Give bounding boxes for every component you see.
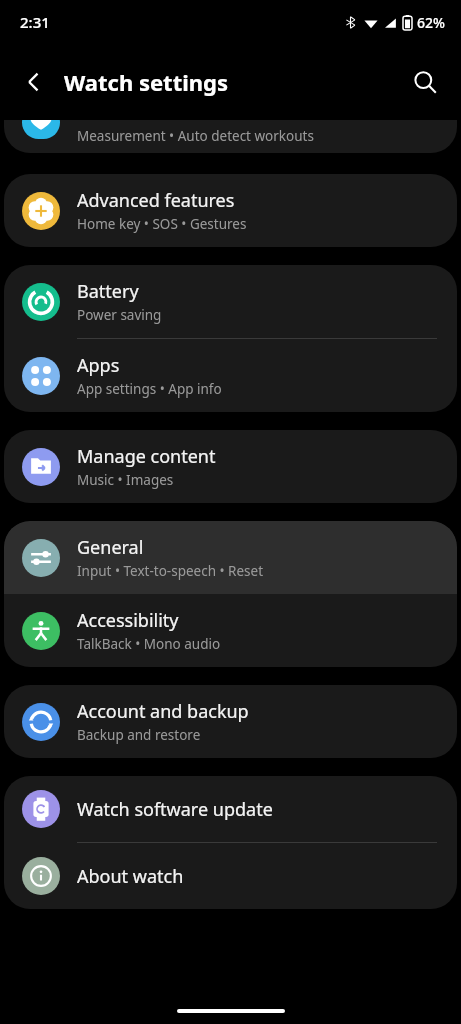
staticText: Backup and restore: [77, 726, 201, 744]
button[interactable]: General: [4, 521, 457, 594]
staticText: 2:31: [20, 12, 50, 32]
staticText: Accessibility: [77, 608, 179, 633]
staticText: Apps: [77, 353, 120, 378]
staticText: Advanced features: [77, 188, 235, 213]
staticText: Watch settings: [64, 67, 229, 97]
button[interactable]: Apps: [4, 339, 457, 412]
button[interactable]: Accessibility: [4, 594, 457, 667]
staticText: 62%: [417, 13, 445, 32]
staticText: Measurement • Auto detect workouts: [77, 127, 314, 145]
staticText: Power saving: [77, 306, 162, 324]
button[interactable]: Watch software update: [4, 776, 457, 842]
staticText: TalkBack • Mono audio: [77, 635, 221, 653]
button[interactable]: Account and backup: [4, 685, 457, 758]
staticText: Watch software update: [77, 797, 273, 822]
staticText: Manage content: [77, 444, 216, 469]
staticText: Music • Images: [77, 471, 174, 489]
staticText: App settings • App info: [77, 380, 222, 398]
staticText: Battery: [77, 279, 139, 304]
button[interactable]: Battery: [4, 265, 457, 338]
button[interactable]: About watch: [4, 843, 457, 909]
button[interactable]: Search: [401, 58, 449, 106]
button[interactable]: Advanced features: [4, 174, 457, 247]
button[interactable]: Back: [10, 58, 58, 106]
staticText: Home key • SOS • Gestures: [77, 215, 247, 233]
staticText: About watch: [77, 864, 184, 889]
staticText: Input • Text-to-speech • Reset: [77, 562, 264, 580]
staticText: General: [77, 535, 144, 560]
button[interactable]: Measurement • Auto detect workouts: [4, 120, 457, 153]
button[interactable]: Manage content: [4, 430, 457, 503]
staticText: Account and backup: [77, 699, 249, 724]
